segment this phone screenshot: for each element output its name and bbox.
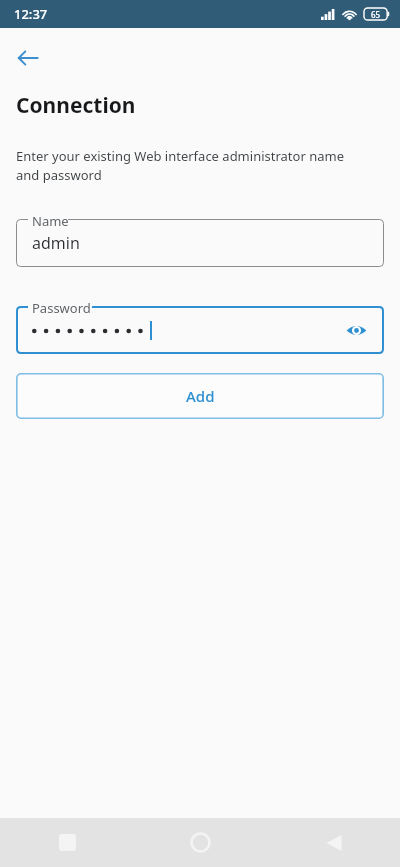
staticText: Name (32, 212, 69, 230)
button[interactable]: Back (7, 37, 49, 79)
staticText: Enter your existing Web interface admini… (16, 147, 358, 184)
staticText: Connection (16, 91, 136, 120)
staticText: Add (186, 386, 215, 406)
button[interactable]: Show password (342, 316, 370, 344)
button[interactable]: Recents (0, 818, 134, 867)
staticText: 65 (371, 9, 381, 20)
staticText: 12:37 (14, 5, 48, 23)
button[interactable]: Name (16, 210, 384, 267)
staticText: Password (32, 299, 91, 317)
button[interactable]: Add (16, 373, 384, 419)
button[interactable]: Password (16, 297, 384, 354)
staticText: admin (32, 232, 80, 254)
